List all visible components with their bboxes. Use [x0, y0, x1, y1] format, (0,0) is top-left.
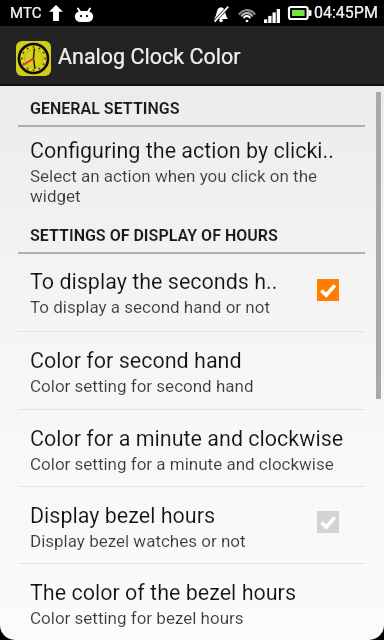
staticText: The color of the bezel hours — [30, 580, 296, 605]
staticText: Display bezel hours — [30, 503, 216, 528]
button[interactable]: Color for a minute and clockwise — [0, 410, 384, 486]
staticText: 04:45PM — [314, 3, 378, 22]
button[interactable]: Color for second hand — [0, 332, 384, 409]
staticText: Color setting for bezel hours — [30, 608, 244, 627]
staticText: Color setting for second hand — [30, 376, 254, 396]
staticText: SETTINGS OF DISPLAY OF HOURS — [30, 226, 278, 245]
staticText: Configuring the action by clicki.. — [30, 138, 334, 163]
other: App icon — [16, 41, 51, 76]
staticText: Analog Clock Color — [58, 44, 241, 69]
staticText: MTC — [10, 4, 42, 22]
staticText: Select an action when you click on the w… — [30, 166, 330, 206]
staticText: Color setting for a minute and clockwise — [30, 454, 334, 474]
staticText: Color for a minute and clockwise — [30, 426, 344, 451]
staticText: Color for second hand — [30, 348, 242, 373]
staticText: To display the seconds h.. — [30, 269, 278, 294]
staticText: Display bezel watches or not — [30, 531, 246, 551]
staticText: To display a second hand or not — [30, 297, 270, 317]
button[interactable]: Configuring the action by clicki.. — [0, 127, 384, 206]
button[interactable]: To display the seconds h.. — [0, 254, 384, 331]
button[interactable]: Display bezel hours — [0, 487, 384, 563]
staticText: GENERAL SETTINGS — [30, 99, 180, 118]
button[interactable]: The color of the bezel hours — [0, 564, 384, 640]
